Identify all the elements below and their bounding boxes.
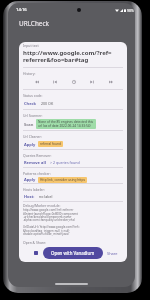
staticText: Host:	[24, 194, 35, 199]
staticText: Share	[107, 251, 118, 256]
staticText: no label	[39, 194, 53, 199]
staticText: Url Cleaner:	[23, 134, 42, 139]
staticText: 200 OK	[41, 101, 54, 106]
staticText: Open with Vanadium	[51, 250, 95, 256]
staticText: 14:16	[16, 7, 27, 13]
button[interactable]: Open with Vanadium	[43, 247, 103, 259]
staticText: None of the 85 engines detected this url…	[38, 120, 94, 128]
button[interactable]: Remove all	[23, 159, 47, 166]
button[interactable]: Scan	[23, 121, 35, 128]
button[interactable]: Share	[103, 247, 122, 259]
staticText: Hosts labeler:	[23, 187, 45, 192]
staticText: Queries Remover:	[23, 153, 52, 158]
staticText: Open & Share:	[23, 240, 46, 245]
staticText: Check	[24, 101, 37, 106]
staticText: Scan	[24, 122, 34, 127]
staticText: referral found	[40, 142, 61, 146]
staticText: Apply	[24, 177, 36, 182]
staticText: Apply	[24, 142, 36, 147]
staticText: History:	[23, 71, 36, 76]
button[interactable]: Next	[86, 76, 97, 87]
button[interactable]: Apply	[23, 141, 37, 148]
staticText: http://www.google.com/?ref= referrer&foo…	[23, 49, 112, 64]
button[interactable]: Forward	[105, 76, 116, 87]
button[interactable]: Host:	[23, 193, 36, 200]
staticText: Status code:	[23, 93, 43, 98]
button[interactable]: Open with default browser	[30, 247, 41, 259]
button[interactable]: History	[68, 76, 79, 87]
button[interactable]: Apply	[23, 176, 37, 183]
staticText: Debug/Marker module:	[23, 203, 61, 208]
staticText: Remove all	[24, 160, 46, 165]
staticText: Url Scanner:	[23, 113, 43, 118]
staticText: UrlDataUrl='http://www.google.com/?ref= …	[23, 225, 80, 236]
staticText: 98%	[127, 8, 134, 13]
button[interactable]: > 2 queries found	[50, 160, 80, 165]
button[interactable]: Check	[23, 100, 38, 107]
staticText: URLCheck	[19, 19, 49, 28]
staticText: Patterns checker:	[23, 171, 51, 176]
button[interactable]: Previous	[49, 76, 60, 87]
staticText: Http link, consider using https	[40, 178, 85, 182]
staticText: Input text	[23, 43, 39, 48]
staticText: http://www.google.com/?ref=referrer #Int…	[23, 208, 78, 222]
button[interactable]: Rewind	[31, 76, 42, 87]
